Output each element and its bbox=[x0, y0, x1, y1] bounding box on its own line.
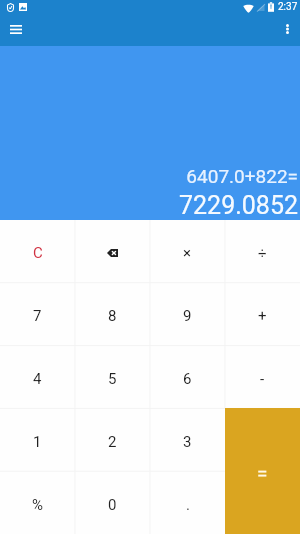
staticText: . bbox=[186, 496, 190, 514]
staticText: 5 bbox=[108, 370, 117, 388]
staticText: 7229.0852 bbox=[179, 191, 298, 220]
staticText: × bbox=[183, 244, 192, 262]
button[interactable]: ÷ bbox=[225, 220, 300, 282]
button[interactable]: × bbox=[150, 220, 225, 282]
staticText: 6 bbox=[183, 370, 192, 388]
button[interactable]: 1 bbox=[0, 408, 75, 471]
button[interactable]: 2 bbox=[75, 408, 150, 471]
staticText: % bbox=[32, 496, 43, 514]
staticText: + bbox=[258, 307, 267, 325]
button[interactable]: 9 bbox=[150, 282, 225, 345]
staticText: 4 bbox=[33, 370, 42, 388]
staticText: ÷ bbox=[258, 244, 267, 262]
button[interactable]: Open navigation menu bbox=[0, 13, 32, 45]
button[interactable]: More options bbox=[271, 13, 300, 45]
button[interactable]: C bbox=[0, 220, 75, 282]
button[interactable]: 3 bbox=[150, 408, 225, 471]
button[interactable]: - bbox=[225, 345, 300, 408]
button[interactable]: 7 bbox=[0, 282, 75, 345]
staticText: 3 bbox=[183, 433, 192, 451]
button[interactable]: 6 bbox=[150, 345, 225, 408]
staticText: 2 bbox=[108, 433, 117, 451]
staticText: 1 bbox=[33, 433, 42, 451]
staticText: 9 bbox=[183, 307, 192, 325]
button[interactable]: + bbox=[225, 282, 300, 345]
button[interactable]: 0 bbox=[75, 471, 150, 534]
staticText: 2:37 bbox=[278, 1, 298, 13]
button[interactable]: 5 bbox=[75, 345, 150, 408]
other: Backspace bbox=[107, 249, 118, 257]
staticText: 0 bbox=[108, 496, 117, 514]
button[interactable]: Backspace bbox=[75, 220, 150, 282]
staticText: 6407.0+822= bbox=[186, 165, 298, 187]
staticText: C bbox=[33, 244, 43, 262]
staticText: 8 bbox=[108, 307, 117, 325]
staticText: = bbox=[257, 462, 268, 484]
staticText: - bbox=[260, 370, 265, 388]
staticText: 7 bbox=[33, 307, 42, 325]
button[interactable]: 8 bbox=[75, 282, 150, 345]
button[interactable]: 4 bbox=[0, 345, 75, 408]
button[interactable]: = bbox=[225, 408, 300, 534]
button[interactable]: % bbox=[0, 471, 75, 534]
